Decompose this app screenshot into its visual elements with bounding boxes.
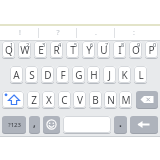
staticText: 1 <box>10 41 14 48</box>
staticText: ! <box>17 28 23 39</box>
staticText: 8 <box>121 41 125 48</box>
button[interactable]: R <box>50 41 63 58</box>
button[interactable]: I <box>113 41 126 58</box>
button[interactable]: U <box>97 41 110 58</box>
button[interactable]: A <box>10 66 23 83</box>
button[interactable]: L <box>134 66 147 83</box>
staticText: 0 <box>153 41 157 48</box>
staticText: W <box>20 43 30 57</box>
button[interactable]: S <box>25 66 38 83</box>
button[interactable]: F <box>56 66 69 83</box>
button[interactable]: . <box>114 116 127 133</box>
staticText: B <box>92 93 99 107</box>
staticText: 4 <box>58 41 62 48</box>
staticText: 9 <box>137 41 141 48</box>
button[interactable] <box>63 116 111 133</box>
staticText: A <box>13 68 20 82</box>
staticText: J <box>108 68 111 82</box>
staticText: V <box>77 93 83 107</box>
button[interactable] <box>43 116 60 133</box>
button[interactable]: P <box>145 41 158 58</box>
button[interactable]: N <box>104 91 117 108</box>
staticText: L <box>138 68 144 82</box>
staticText: I <box>118 43 122 57</box>
staticText: 7 <box>105 41 109 48</box>
button[interactable]: X <box>42 91 55 108</box>
staticText: 3 <box>42 41 46 48</box>
button[interactable] <box>130 116 158 133</box>
staticText: O <box>132 43 140 57</box>
staticText: K <box>121 68 128 82</box>
staticText: ? <box>55 28 61 39</box>
staticText: Z <box>31 93 37 107</box>
staticText: E <box>38 43 44 57</box>
button[interactable]: Z <box>27 91 40 108</box>
staticText: Y <box>86 43 92 57</box>
button[interactable]: ?123 <box>2 116 26 133</box>
staticText: M <box>121 93 131 107</box>
button[interactable]: E <box>34 41 47 58</box>
button[interactable] <box>136 91 158 108</box>
button[interactable]: C <box>58 91 71 108</box>
button[interactable]: B <box>89 91 102 108</box>
staticText: : <box>131 28 137 39</box>
staticText: D <box>44 68 52 82</box>
staticText: U <box>100 43 108 57</box>
button[interactable]: , <box>29 116 40 133</box>
staticText: C <box>61 93 68 107</box>
button[interactable]: T <box>66 41 79 58</box>
button[interactable]: O <box>129 41 142 58</box>
button[interactable]: H <box>87 66 100 83</box>
button[interactable]: J <box>103 66 116 83</box>
button[interactable]: W <box>18 41 31 58</box>
staticText: F <box>60 68 66 82</box>
staticText: , <box>33 116 36 130</box>
staticText: 6 <box>90 41 94 48</box>
button[interactable]: V <box>73 91 86 108</box>
button[interactable]: D <box>41 66 54 83</box>
staticText: ?123 <box>8 121 21 129</box>
staticText: 2 <box>26 41 30 48</box>
button[interactable] <box>2 91 24 108</box>
button[interactable]: G <box>72 66 85 83</box>
staticText: 5 <box>74 41 78 48</box>
button[interactable]: M <box>119 91 132 108</box>
staticText: N <box>107 93 115 107</box>
staticText: R <box>53 43 60 57</box>
button[interactable]: Y <box>82 41 95 58</box>
staticText: . <box>93 28 99 39</box>
staticText: P <box>148 43 155 57</box>
staticText: T <box>70 43 76 57</box>
staticText: G <box>75 68 83 82</box>
staticText: S <box>29 68 35 82</box>
staticText: . <box>119 116 122 130</box>
button[interactable]: Q <box>2 41 15 58</box>
button[interactable]: K <box>118 66 131 83</box>
staticText: Q <box>5 43 13 57</box>
staticText: X <box>46 93 52 107</box>
staticText: H <box>90 68 98 82</box>
